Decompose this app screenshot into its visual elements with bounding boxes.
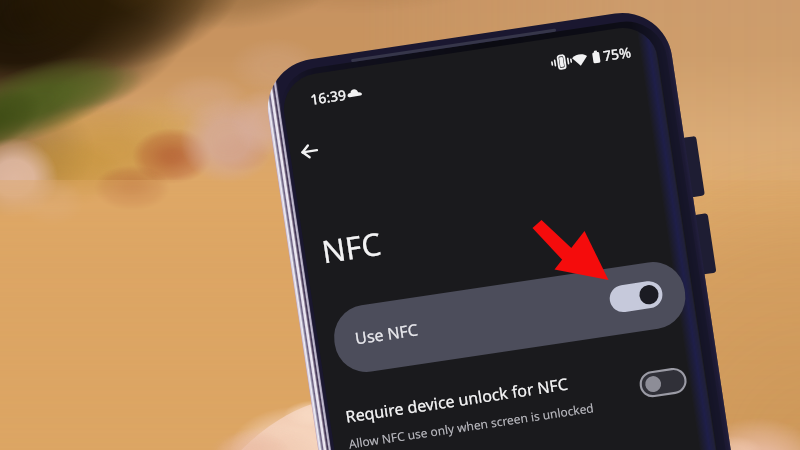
button[interactable]: Back bbox=[292, 134, 336, 172]
button[interactable] bbox=[340, 352, 692, 446]
button[interactable] bbox=[330, 254, 682, 350]
